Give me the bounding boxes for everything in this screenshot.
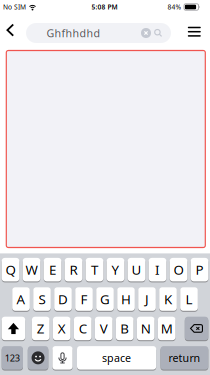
button[interactable]: J	[138, 287, 156, 311]
button[interactable]: L	[180, 287, 198, 311]
staticText: T	[91, 261, 98, 278]
button[interactable]: N	[137, 317, 154, 340]
staticText: Z	[37, 320, 45, 337]
button[interactable]: Search field	[26, 23, 171, 43]
staticText: V	[100, 320, 108, 337]
button[interactable]: Search	[154, 29, 163, 38]
button[interactable]: V	[95, 317, 112, 340]
button[interactable]: E	[44, 258, 61, 281]
button[interactable]: M	[158, 317, 175, 340]
staticText: A	[16, 290, 25, 308]
button[interactable]: Delete	[185, 317, 208, 340]
button[interactable]: Q	[2, 258, 19, 281]
button[interactable]: 123	[2, 346, 23, 370]
staticText: No SIM	[3, 3, 26, 11]
staticText: space	[102, 351, 131, 365]
button[interactable]: Dictate	[52, 346, 73, 370]
button[interactable]: S	[33, 287, 51, 311]
staticText: U	[131, 261, 141, 278]
staticText: X	[58, 320, 66, 337]
staticText: N	[141, 320, 151, 337]
staticText: P	[195, 261, 203, 278]
button[interactable]: T	[86, 258, 103, 281]
staticText: O	[173, 261, 183, 278]
button[interactable]: P	[191, 258, 208, 281]
button[interactable]: K	[159, 287, 177, 311]
staticText: S	[38, 290, 45, 308]
staticText: Ghfhhdhd	[46, 26, 100, 40]
button[interactable]: B	[116, 317, 133, 340]
button[interactable]: Y	[107, 258, 124, 281]
button[interactable]: G	[96, 287, 114, 311]
staticText: W	[25, 261, 37, 278]
button[interactable]: Z	[32, 317, 49, 340]
button[interactable]: Back	[6, 23, 16, 37]
staticText: J	[145, 290, 149, 308]
staticText: H	[121, 290, 131, 308]
staticText: E	[49, 261, 56, 278]
staticText: G	[100, 290, 110, 308]
button[interactable]: A	[12, 287, 30, 311]
button[interactable]: Clear text	[141, 28, 151, 38]
button[interactable]: X	[53, 317, 70, 340]
staticText: B	[120, 320, 129, 337]
button[interactable]: F	[75, 287, 93, 311]
button[interactable]: C	[74, 317, 91, 340]
button[interactable]: H	[117, 287, 135, 311]
staticText: L	[185, 290, 192, 308]
button[interactable]: return	[160, 346, 208, 370]
button[interactable]: R	[65, 258, 82, 281]
button[interactable]: space	[77, 346, 156, 370]
staticText: 84%	[167, 3, 181, 11]
staticText: Y	[111, 261, 119, 278]
button[interactable]: W	[23, 258, 40, 281]
button[interactable]: Emoji	[28, 346, 48, 370]
button[interactable]: O	[170, 258, 187, 281]
staticText: 123	[5, 352, 20, 364]
staticText: 5:08 PM	[91, 3, 117, 11]
staticText: K	[164, 290, 172, 308]
staticText: return	[168, 351, 200, 365]
staticText: M	[161, 320, 173, 337]
staticText: Q	[5, 261, 15, 278]
staticText: R	[69, 261, 77, 278]
button[interactable]: Shift	[2, 317, 25, 340]
staticText: F	[80, 290, 87, 308]
staticText: D	[58, 290, 68, 308]
staticText: I	[155, 261, 160, 278]
button[interactable]: U	[128, 258, 145, 281]
button[interactable]: Menu	[186, 25, 203, 39]
button[interactable]: D	[54, 287, 72, 311]
staticText: C	[79, 320, 87, 337]
button[interactable]: I	[149, 258, 166, 281]
